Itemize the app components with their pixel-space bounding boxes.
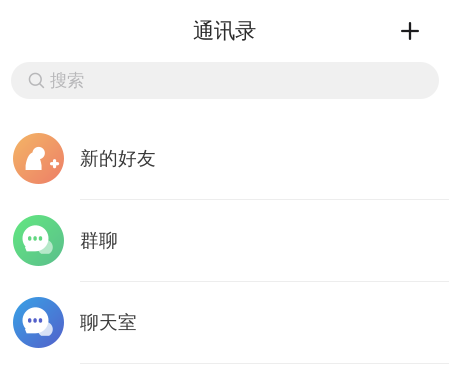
button[interactable]: 新的好友 <box>0 118 449 200</box>
staticText: 聊天室 <box>80 311 137 334</box>
staticText: 搜索 <box>50 70 84 91</box>
button[interactable]: 聊天室 <box>0 282 449 364</box>
button[interactable]: 群聊 <box>0 200 449 282</box>
staticText: 群聊 <box>80 229 118 252</box>
staticText: 新的好友 <box>80 147 156 170</box>
staticText: 通讯录 <box>193 18 256 44</box>
button[interactable]: 搜索 <box>11 62 439 99</box>
button[interactable]: Add <box>388 9 432 53</box>
